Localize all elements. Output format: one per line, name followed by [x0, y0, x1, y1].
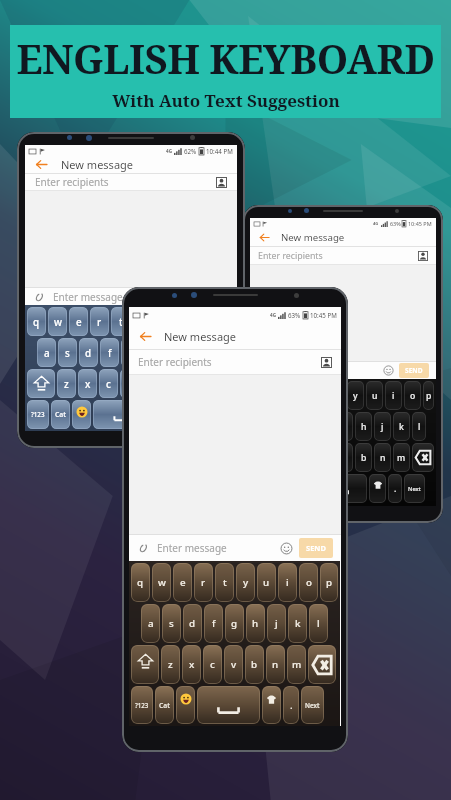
button[interactable]: Emoji [280, 542, 293, 555]
button[interactable]: Attach [25, 288, 237, 305]
button[interactable]: y [347, 381, 364, 410]
button[interactable]: Cat [155, 686, 174, 724]
button[interactable]: t [328, 381, 345, 410]
button[interactable]: SEND [299, 538, 333, 558]
button[interactable]: m [393, 443, 410, 472]
button[interactable]: Back [25, 156, 237, 173]
button[interactable]: Attach [129, 535, 341, 561]
button[interactable]: o [299, 563, 318, 602]
button[interactable]: g [121, 338, 140, 367]
button[interactable]: key [262, 686, 281, 724]
button[interactable]: SEND [195, 289, 229, 305]
button[interactable]: e [69, 307, 88, 336]
button[interactable]: w [152, 563, 171, 602]
button[interactable]: t [111, 307, 130, 336]
button[interactable]: h [142, 338, 161, 367]
button[interactable]: g [225, 604, 244, 643]
button[interactable]: i [385, 381, 402, 410]
button[interactable]: z [57, 369, 76, 398]
button[interactable]: e [173, 563, 192, 602]
button[interactable]: k [184, 338, 203, 367]
button[interactable]: key [412, 443, 434, 472]
button[interactable]: h [246, 604, 265, 643]
button[interactable]: l [309, 604, 328, 643]
button[interactable]: b [245, 645, 264, 684]
button[interactable]: j [163, 338, 182, 367]
button[interactable]: . [283, 686, 299, 724]
button[interactable]: Attach [250, 362, 436, 379]
button[interactable]: a [141, 604, 160, 643]
button[interactable]: o [195, 307, 214, 336]
button[interactable]: ?123 [131, 686, 153, 724]
button[interactable]: r [194, 563, 213, 602]
button[interactable]: key [93, 400, 156, 429]
button[interactable]: k [393, 412, 410, 441]
button[interactable]: key [197, 686, 260, 724]
button[interactable]: v [336, 443, 353, 472]
button[interactable]: Cat [51, 400, 70, 429]
button[interactable]: f [100, 338, 119, 367]
button[interactable]: t [215, 563, 234, 602]
button[interactable]: s [58, 338, 77, 367]
button[interactable]: n [374, 443, 391, 472]
button[interactable]: x [78, 369, 97, 398]
button[interactable]: r [90, 307, 109, 336]
button[interactable]: m [183, 369, 202, 398]
button[interactable]: v [120, 369, 139, 398]
button[interactable]: s [162, 604, 181, 643]
button[interactable]: a [37, 338, 56, 367]
button[interactable]: z [161, 645, 180, 684]
button[interactable]: c [99, 369, 118, 398]
button[interactable]: h [355, 412, 372, 441]
button[interactable]: n [162, 369, 181, 398]
button[interactable]: i [174, 307, 193, 336]
button[interactable]: m [287, 645, 306, 684]
button[interactable]: d [79, 338, 98, 367]
button[interactable]: n [266, 645, 285, 684]
button[interactable]: y [236, 563, 255, 602]
button[interactable]: l [205, 338, 224, 367]
button[interactable]: key [369, 474, 386, 503]
button[interactable]: i [278, 563, 297, 602]
button[interactable]: u [257, 563, 276, 602]
button[interactable]: . [388, 474, 402, 503]
button[interactable]: v [224, 645, 243, 684]
button[interactable]: l [412, 412, 426, 441]
button[interactable]: d [183, 604, 202, 643]
button[interactable]: q [131, 563, 150, 602]
button[interactable]: b [355, 443, 372, 472]
button[interactable]: key [72, 400, 91, 429]
button[interactable]: key [176, 686, 195, 724]
button[interactable]: Enter recipients [129, 350, 341, 374]
button[interactable]: SEND [399, 363, 429, 378]
button[interactable]: Emoji [383, 365, 394, 376]
button[interactable]: q [27, 307, 46, 336]
button[interactable]: ?123 [27, 400, 49, 429]
button[interactable]: x [182, 645, 201, 684]
button[interactable]: key [308, 645, 336, 684]
button[interactable]: Enter recipients [250, 247, 436, 264]
button[interactable]: Next [301, 686, 324, 724]
button[interactable]: y [132, 307, 151, 336]
button[interactable]: o [404, 381, 421, 410]
button[interactable]: b [141, 369, 160, 398]
button[interactable]: u [366, 381, 383, 410]
button[interactable]: key [27, 369, 55, 398]
button[interactable]: key [204, 369, 232, 398]
button[interactable]: p [423, 381, 434, 410]
button[interactable]: Back [129, 323, 341, 349]
